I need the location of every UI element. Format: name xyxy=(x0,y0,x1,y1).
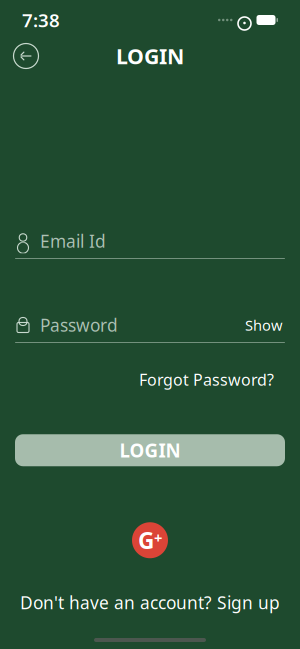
button[interactable]: LOGIN xyxy=(15,434,285,466)
staticText: G xyxy=(138,525,154,555)
button[interactable]: Forgot Password? xyxy=(137,363,276,396)
button[interactable]: Show xyxy=(243,312,285,338)
staticText: Forgot Password? xyxy=(139,369,274,390)
staticText: Don't have an account? Sign up xyxy=(20,591,280,614)
staticText: Email Id xyxy=(40,229,106,252)
button[interactable]: Back xyxy=(6,36,46,76)
staticText: Show xyxy=(245,315,283,335)
staticText: LOGIN xyxy=(116,42,184,70)
staticText: LOGIN xyxy=(119,438,180,463)
staticText: 7:38 xyxy=(22,8,60,32)
button[interactable]: Don't have an account? Sign up xyxy=(10,585,290,620)
button[interactable]: Sign in with Google xyxy=(128,518,172,562)
staticText: + xyxy=(154,528,162,547)
staticText: Password xyxy=(40,313,118,336)
